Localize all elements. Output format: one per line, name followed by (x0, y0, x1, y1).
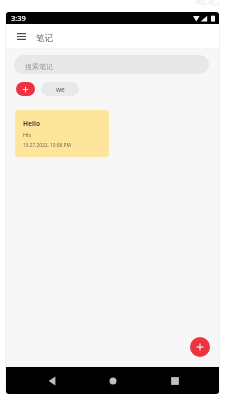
button[interactable]: Home (104, 372, 122, 390)
staticText: 笔记 (36, 33, 53, 44)
staticText: Hello (23, 119, 41, 128)
staticText: 10.27.2022, 10:08 PM (23, 142, 71, 149)
button[interactable]: Back (43, 372, 61, 390)
button[interactable]: Add label (16, 82, 35, 96)
button[interactable]: Recents (166, 372, 184, 390)
staticText: His (23, 131, 32, 138)
button[interactable]: 搜索笔记 (14, 55, 209, 74)
button[interactable]: we (41, 82, 79, 96)
button[interactable]: Hello (15, 110, 109, 157)
staticText: 3:39 (11, 13, 26, 23)
staticText: we (56, 85, 65, 94)
staticText: 笔记 (194, 0, 220, 7)
button[interactable]: Add note (190, 337, 210, 357)
button[interactable]: Menu (13, 28, 29, 44)
staticText: 搜索笔记 (25, 62, 53, 71)
